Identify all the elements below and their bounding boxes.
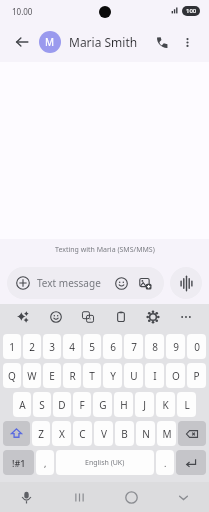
staticText: U xyxy=(130,369,138,383)
button[interactable]: Voice input xyxy=(0,482,53,512)
staticText: C xyxy=(79,427,86,441)
staticText: R xyxy=(69,369,76,383)
button[interactable]: T xyxy=(83,363,101,388)
button[interactable]: Z xyxy=(32,421,50,446)
staticText: Text message xyxy=(37,276,111,290)
button[interactable]: 1 xyxy=(3,334,21,359)
staticText: D xyxy=(58,398,66,412)
button[interactable]: 9 xyxy=(166,334,185,359)
button[interactable]: W xyxy=(23,363,41,388)
button[interactable]: 7 xyxy=(124,334,143,359)
staticText: English (UK) xyxy=(85,458,125,468)
button[interactable]: Q xyxy=(3,363,21,388)
button[interactable]: I xyxy=(145,363,164,388)
staticText: I xyxy=(153,369,157,383)
button[interactable]: 3 xyxy=(43,334,61,359)
button[interactable]: Clipboard xyxy=(111,307,131,327)
button[interactable]: 5 xyxy=(83,334,101,359)
button[interactable]: U xyxy=(124,363,143,388)
staticText: !#1 xyxy=(12,457,26,469)
button[interactable]: J xyxy=(135,392,154,417)
button[interactable]: . xyxy=(156,450,174,475)
staticText: Q xyxy=(8,369,16,383)
button[interactable]: M xyxy=(157,421,176,446)
staticText: V xyxy=(101,427,107,441)
button[interactable]: D xyxy=(53,392,71,417)
staticText: 100 xyxy=(186,7,197,15)
staticText: Y xyxy=(110,369,116,383)
staticText: 9 xyxy=(173,340,179,354)
staticText: 1 xyxy=(9,340,15,354)
button[interactable]: C xyxy=(73,421,92,446)
button[interactable]: 8 xyxy=(145,334,164,359)
staticText: P xyxy=(193,369,200,383)
button[interactable]: Backspace xyxy=(178,421,206,446)
button[interactable]: Assistant xyxy=(13,307,33,327)
button[interactable]: Translate xyxy=(78,307,98,327)
staticText: 6 xyxy=(110,340,116,354)
staticText: 4 xyxy=(69,340,75,354)
staticText: E xyxy=(49,369,55,383)
button[interactable]: 2 xyxy=(23,334,41,359)
staticText: 3 xyxy=(49,340,55,354)
staticText: Maria Smith xyxy=(69,34,149,50)
button[interactable]: 4 xyxy=(63,334,81,359)
staticText: G xyxy=(99,398,107,412)
staticText: F xyxy=(79,398,85,412)
staticText: S xyxy=(39,398,45,412)
button[interactable]: More xyxy=(176,307,196,327)
staticText: Z xyxy=(38,427,44,441)
button[interactable]: X xyxy=(52,421,71,446)
button[interactable]: K xyxy=(156,392,175,417)
button[interactable]: B xyxy=(115,421,134,446)
staticText: X xyxy=(59,427,65,441)
staticText: , xyxy=(44,457,47,469)
staticText: N xyxy=(142,427,150,441)
staticText: M xyxy=(45,35,55,49)
button[interactable]: Back xyxy=(10,30,34,54)
button[interactable]: Emoji xyxy=(111,273,131,293)
staticText: K xyxy=(162,398,169,412)
staticText: 5 xyxy=(89,340,95,354)
button[interactable]: , xyxy=(36,450,54,475)
button[interactable]: O xyxy=(166,363,185,388)
button[interactable]: Keyboard settings xyxy=(143,307,163,327)
button[interactable]: Y xyxy=(103,363,122,388)
button[interactable]: Emoji xyxy=(46,307,66,327)
button[interactable]: P xyxy=(187,363,206,388)
button[interactable]: H xyxy=(114,392,133,417)
button[interactable]: V xyxy=(94,421,113,446)
button[interactable]: G xyxy=(93,392,112,417)
staticText: Texting with Maria (SMS/MMS) xyxy=(55,245,155,255)
button[interactable]: F xyxy=(73,392,91,417)
button[interactable]: Space xyxy=(56,450,154,475)
staticText: H xyxy=(120,398,128,412)
button[interactable]: S xyxy=(33,392,51,417)
button[interactable]: 6 xyxy=(103,334,122,359)
staticText: A xyxy=(19,398,26,412)
button[interactable]: Home xyxy=(105,482,157,512)
button[interactable]: Shift xyxy=(3,421,30,446)
staticText: W xyxy=(27,369,37,383)
button[interactable]: R xyxy=(63,363,81,388)
button[interactable]: Text message xyxy=(7,267,164,299)
button[interactable]: Hide keyboard xyxy=(157,482,209,512)
staticText: J xyxy=(143,398,146,412)
staticText: T xyxy=(89,369,95,383)
button[interactable]: Symbols xyxy=(3,450,34,475)
button[interactable]: L xyxy=(177,392,196,417)
staticText: . xyxy=(164,457,167,469)
button[interactable]: E xyxy=(43,363,61,388)
staticText: O xyxy=(172,369,180,383)
button[interactable]: Enter xyxy=(176,450,206,475)
button[interactable]: 0 xyxy=(187,334,206,359)
button[interactable]: Call xyxy=(149,29,175,55)
button[interactable]: Recents xyxy=(53,482,105,512)
button[interactable]: Attach image xyxy=(135,273,155,293)
button[interactable]: Voice message xyxy=(170,267,202,299)
button[interactable]: A xyxy=(13,392,31,417)
button[interactable]: More options xyxy=(175,30,199,54)
staticText: 7 xyxy=(131,340,137,354)
staticText: 8 xyxy=(152,340,158,354)
button[interactable]: N xyxy=(136,421,155,446)
